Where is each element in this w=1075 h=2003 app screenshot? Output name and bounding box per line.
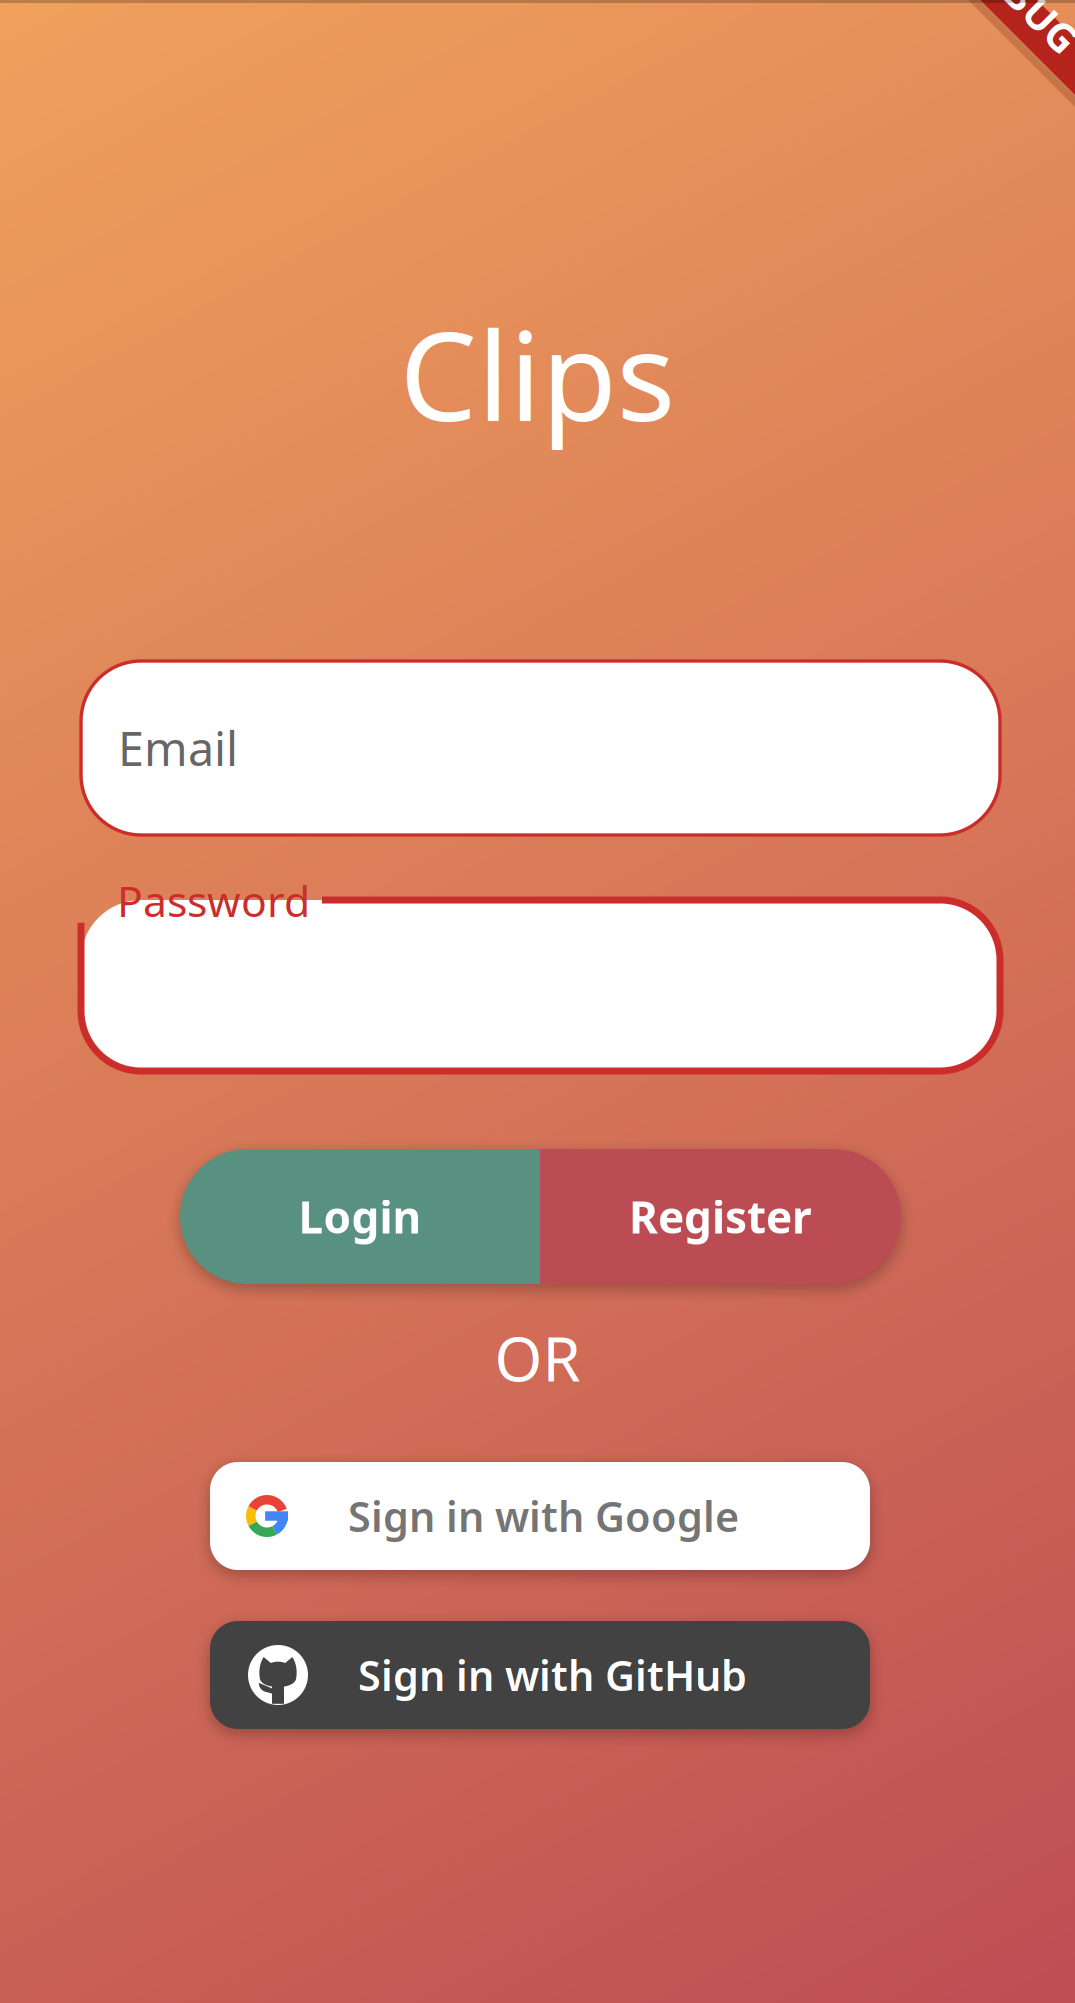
- button[interactable]: Sign in with Google: [210, 1462, 870, 1570]
- staticText: Sign in with GitHub: [358, 1648, 747, 1702]
- staticText: Login: [298, 1187, 421, 1246]
- staticText: Password: [117, 872, 310, 929]
- button[interactable]: Login: [180, 1149, 540, 1284]
- staticText: Sign in with Google: [348, 1489, 739, 1543]
- button[interactable]: Sign in with GitHub: [210, 1621, 870, 1729]
- staticText: Register: [629, 1187, 812, 1246]
- staticText: DEBUG: [955, 0, 1075, 24]
- button[interactable]: Register: [540, 1149, 901, 1284]
- staticText: Email: [118, 717, 238, 779]
- staticText: OR: [494, 1317, 580, 1398]
- staticText: Clips: [399, 292, 675, 455]
